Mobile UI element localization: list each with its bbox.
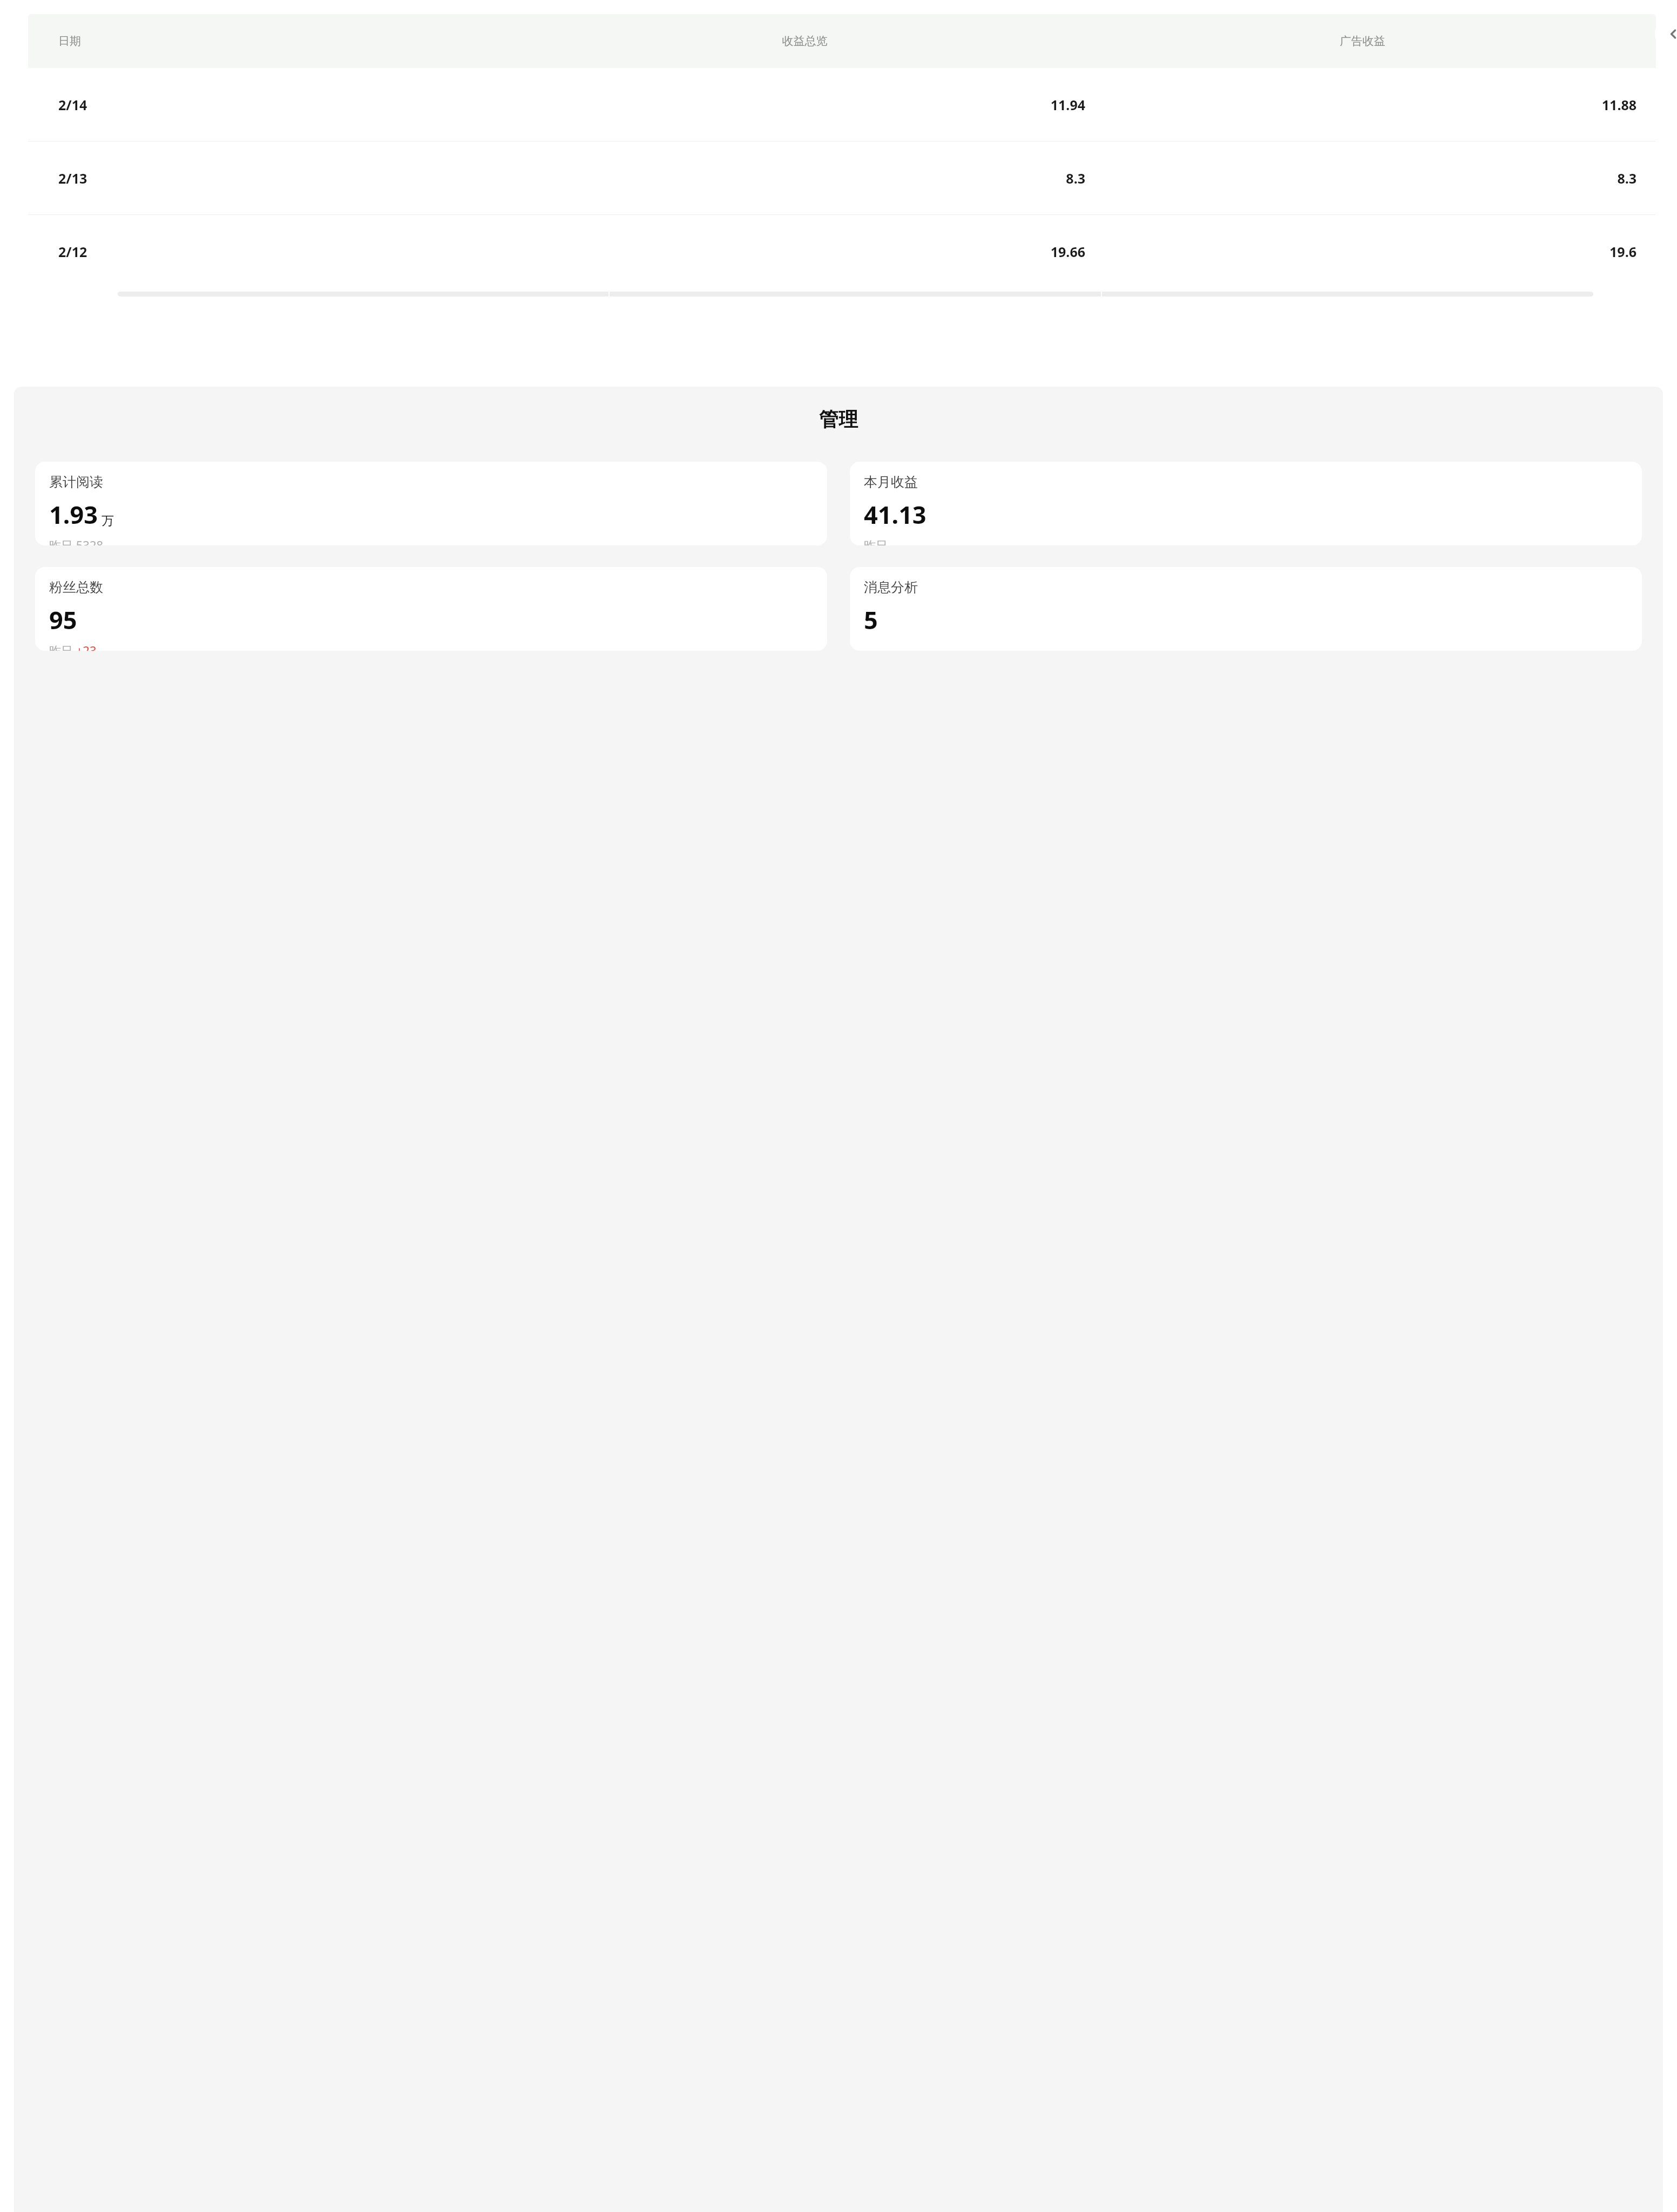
button[interactable]: 累计阅读 [35,462,827,545]
button[interactable]: 2/13 [0,141,1677,215]
staticText: 41.13 [864,498,927,531]
staticText: 昨日 +23 [49,642,97,651]
staticText: 管理 [14,407,1663,431]
staticText: 5 [864,603,878,636]
button[interactable]: 2/14 [0,68,1677,141]
staticText: 19.66 [521,242,1085,261]
button[interactable]: 本月收益 [850,462,1642,545]
staticText: 1.93 [49,498,98,531]
staticText: 8.3 [521,169,1085,187]
staticText: 万 [102,513,114,529]
button[interactable]: 2/12 [0,215,1677,288]
staticText: 日期 [58,34,521,48]
staticText: 广告收益 [1088,34,1637,48]
staticText: 11.94 [521,96,1085,114]
staticText: 昨日 -- [864,537,898,545]
staticText: 昨日 5328 [49,537,104,545]
button[interactable]: 粉丝总数 [35,567,827,651]
staticText: 收益总览 [521,34,1088,48]
staticText: 消息分析 [864,579,918,596]
staticText: 本月收益 [864,474,918,490]
staticText: 2/13 [58,169,521,187]
staticText: 粉丝总数 [49,579,103,596]
staticText: 2/12 [58,242,521,261]
staticText: 8.3 [1088,169,1637,187]
staticText: 19.6 [1088,242,1637,261]
staticText: 2/14 [58,96,521,114]
button[interactable]: 消息分析 [850,567,1642,651]
staticText: 累计阅读 [49,474,103,490]
button[interactable]: Previous [1655,15,1677,53]
staticText: 95 [49,603,77,636]
staticText: 11.88 [1088,96,1637,114]
